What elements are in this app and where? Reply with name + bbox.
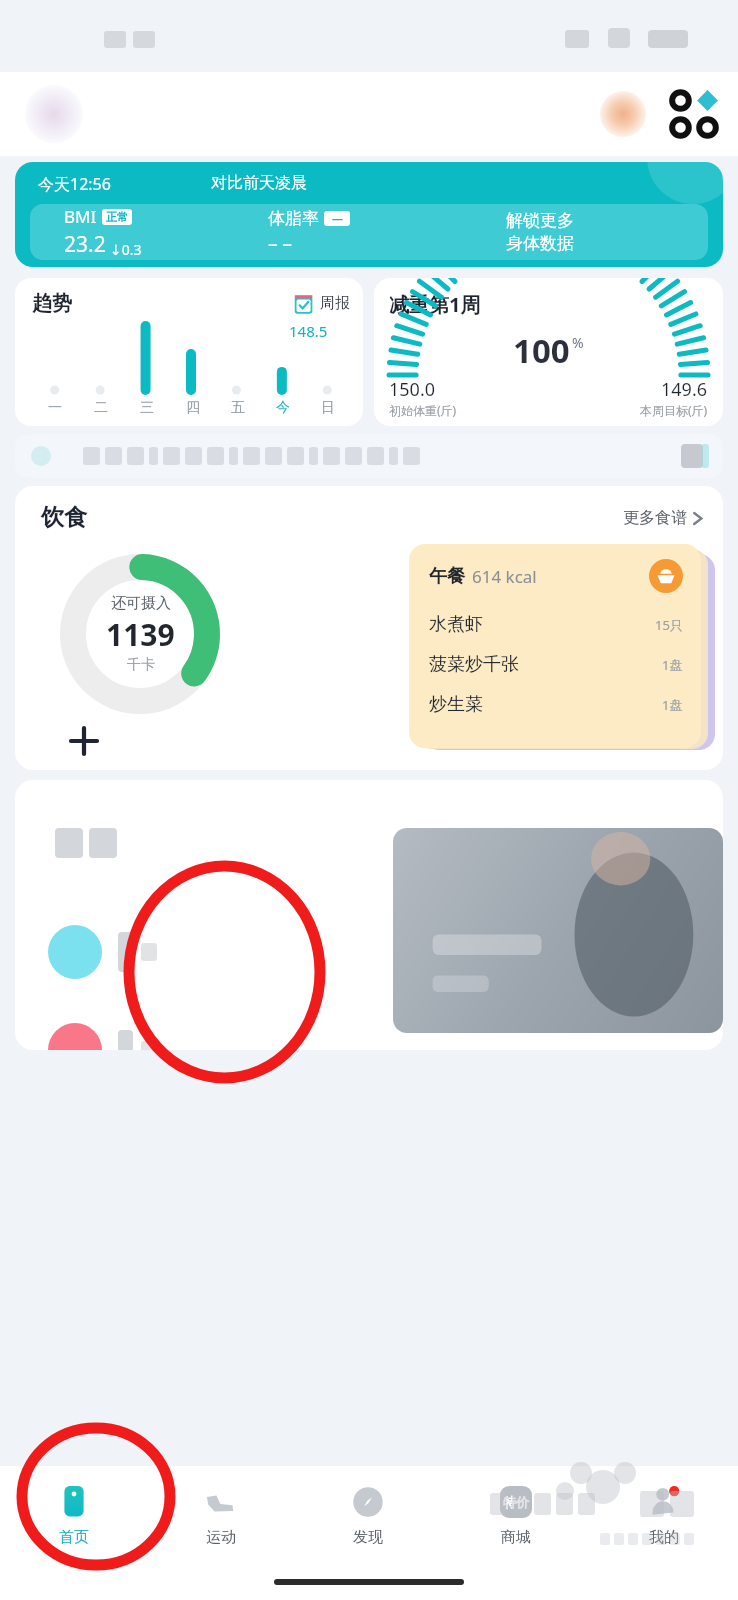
staticText: 特价	[503, 1494, 529, 1510]
staticText: 三	[140, 399, 154, 417]
staticText: 15只	[655, 616, 683, 634]
staticText: 解锁更多	[506, 210, 574, 231]
staticText: 150.0	[389, 377, 436, 402]
staticText: 体脂率	[268, 208, 319, 229]
staticText: 本周目标(斤)	[640, 402, 708, 418]
button[interactable]: Notice	[600, 91, 646, 137]
button[interactable]: 运动	[147, 1466, 294, 1564]
staticText: 149.6	[661, 377, 708, 402]
staticText: 五	[231, 399, 245, 417]
staticText: 四	[186, 399, 200, 417]
button[interactable]: 午餐	[409, 544, 701, 748]
staticText: 发现	[353, 1528, 383, 1547]
staticText: 商城	[501, 1528, 531, 1547]
button[interactable]: Menu	[668, 88, 720, 140]
staticText: 午餐	[429, 565, 465, 588]
staticText: 身体数据	[506, 233, 574, 254]
button[interactable]: 更多食谱	[623, 508, 703, 528]
staticText: 1盘	[662, 656, 683, 674]
staticText: 1盘	[662, 696, 683, 714]
staticText: 二	[94, 399, 108, 417]
button[interactable]: 发现	[294, 1466, 442, 1564]
staticText: 首页	[59, 1528, 89, 1547]
button[interactable]: Profile	[25, 85, 83, 143]
staticText: 对比前天凌晨	[211, 173, 307, 193]
button[interactable]	[15, 780, 723, 1050]
staticText: 饮食	[41, 503, 87, 532]
staticText: 初始体重(斤)	[389, 402, 457, 418]
staticText: 减重第1周	[389, 291, 481, 318]
button[interactable]: 饮食	[15, 486, 723, 770]
staticText: 日	[321, 399, 335, 417]
staticText: 趋势	[32, 291, 72, 316]
staticText: 正常	[106, 210, 128, 224]
button[interactable]: 趋势	[15, 278, 363, 426]
staticText: 1139	[106, 614, 175, 655]
staticText: 148.5	[289, 321, 328, 341]
button[interactable]: 首页	[0, 1466, 147, 1564]
staticText: ↓0.3	[110, 240, 142, 259]
button[interactable]: 特价	[442, 1466, 590, 1564]
staticText: 运动	[206, 1528, 236, 1547]
staticText: 100	[513, 328, 570, 373]
button[interactable]: 减重第1周	[374, 278, 723, 426]
button[interactable]: Add food	[67, 724, 101, 758]
staticText: 我的	[649, 1528, 679, 1547]
staticText: 周报	[320, 294, 350, 313]
button[interactable]: 我的	[590, 1466, 738, 1564]
staticText: 一	[48, 399, 62, 417]
button[interactable]: 今天12:56	[15, 162, 723, 267]
staticText: 千卡	[127, 656, 155, 674]
staticText: BMI	[64, 205, 97, 228]
staticText: 23.2	[64, 230, 106, 259]
staticText: %	[572, 333, 584, 352]
staticText: —	[332, 211, 343, 226]
staticText: 菠菜炒千张	[429, 653, 519, 676]
staticText: 还可摄入	[111, 594, 171, 613]
staticText: – –	[268, 231, 292, 257]
staticText: 水煮虾	[429, 613, 483, 636]
button[interactable]	[15, 434, 723, 478]
staticText: 今	[276, 399, 290, 417]
staticText: 更多食谱	[623, 508, 687, 528]
staticText: 今天12:56	[38, 173, 111, 195]
staticText: 炒生菜	[429, 693, 483, 716]
staticText: 614 kcal	[472, 565, 537, 588]
